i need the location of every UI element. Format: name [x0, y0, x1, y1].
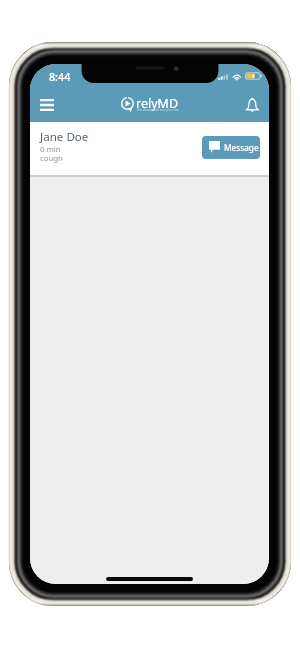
staticText: 8:44 [49, 70, 71, 85]
button[interactable]: Notifications [240, 93, 264, 117]
staticText: relyMD [136, 95, 179, 112]
staticText: Jane Doe [40, 129, 89, 145]
button[interactable]: Message [202, 136, 260, 159]
staticText: cough [40, 153, 63, 164]
staticText: Message [224, 142, 259, 153]
button[interactable]: Menu [35, 93, 59, 117]
staticText: the doctor will see you now [137, 108, 179, 112]
staticText: 0 min [40, 144, 61, 155]
